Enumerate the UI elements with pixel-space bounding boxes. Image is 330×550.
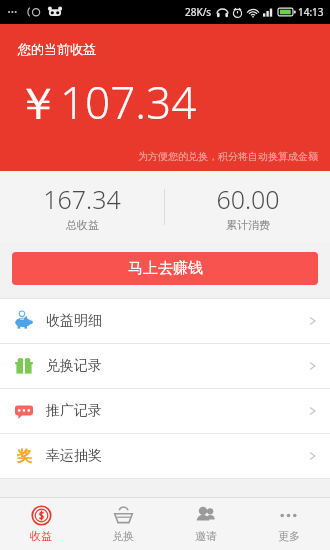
staticText: 您的当前收益: [18, 41, 96, 57]
staticText: 马上去赚钱: [128, 259, 203, 278]
staticText: 60.00: [216, 182, 280, 216]
staticText: 幸运抽奖: [46, 447, 102, 465]
staticText: 14:13: [298, 5, 324, 19]
staticText: 为方便您的兑换，积分将自动换算成金额: [138, 150, 318, 163]
staticText: ￥107.34: [16, 72, 197, 132]
button[interactable]: 兑换: [82, 498, 164, 550]
staticText: 邀请: [195, 529, 217, 543]
staticText: 167.34: [43, 182, 121, 216]
button[interactable]: 推广记录: [0, 389, 330, 433]
button[interactable]: 收益: [0, 498, 82, 550]
button[interactable]: 邀请: [164, 498, 247, 550]
staticText: 兑换: [112, 529, 134, 543]
staticText: 收益: [30, 529, 52, 543]
staticText: 28K/s: [185, 5, 212, 19]
staticText: 总收益: [66, 218, 99, 232]
button[interactable]: 兑换记录: [0, 344, 330, 388]
staticText: 收益明细: [46, 312, 102, 330]
staticText: 推广记录: [46, 402, 102, 420]
button[interactable]: 收益明细: [0, 299, 330, 343]
staticText: 累计消费: [226, 218, 270, 232]
staticText: 更多: [278, 529, 300, 543]
staticText: 奖: [17, 447, 32, 466]
button[interactable]: 马上去赚钱: [12, 252, 318, 285]
button[interactable]: 奖: [0, 434, 330, 478]
staticText: 兑换记录: [46, 357, 102, 375]
button[interactable]: 更多: [247, 498, 330, 550]
